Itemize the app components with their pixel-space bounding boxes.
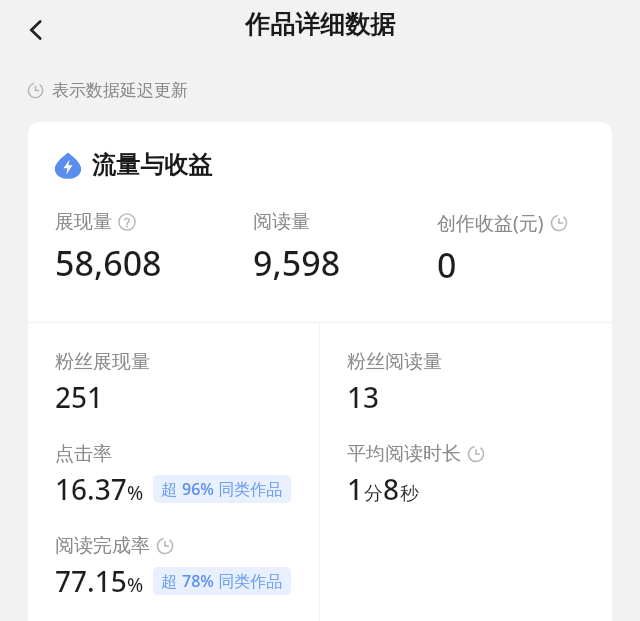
staticText: 8	[383, 470, 400, 508]
staticText: %	[127, 480, 144, 506]
staticText: 流量与收益	[92, 150, 212, 180]
staticText: 粉丝阅读量	[347, 350, 442, 374]
staticText: 16.37	[55, 470, 127, 508]
staticText: 1	[347, 470, 364, 508]
staticText: 超	[161, 478, 182, 500]
staticText: 阅读完成率	[55, 534, 150, 558]
staticText: 创作收益(元)	[437, 210, 544, 236]
staticText: 同类作品	[214, 478, 283, 500]
staticText: 作品详细数据	[0, 9, 640, 40]
staticText: 分	[364, 482, 383, 506]
staticText: 点击率	[55, 442, 112, 466]
staticText: 13	[347, 378, 380, 416]
staticText: 0	[437, 242, 457, 288]
staticText: 超	[161, 570, 182, 592]
button[interactable]: 超	[153, 567, 291, 595]
staticText: 粉丝展现量	[55, 350, 150, 374]
staticText: 展现量	[55, 210, 112, 234]
button[interactable]: 超	[153, 475, 291, 503]
staticText: 同类作品	[214, 570, 283, 592]
staticText: 表示数据延迟更新	[52, 80, 188, 101]
staticText: 秒	[400, 482, 419, 506]
staticText: 58,608	[55, 240, 162, 286]
staticText: 77.15	[55, 562, 127, 600]
staticText: 阅读量	[253, 210, 310, 234]
button[interactable]: Back	[10, 4, 62, 56]
staticText: 9,598	[253, 240, 341, 286]
staticText: 平均阅读时长	[347, 442, 461, 466]
staticText: %	[127, 572, 144, 598]
staticText: 251	[55, 378, 104, 416]
staticText: 96%	[182, 478, 214, 500]
staticText: 78%	[182, 570, 214, 592]
button[interactable]: Help	[118, 213, 136, 231]
